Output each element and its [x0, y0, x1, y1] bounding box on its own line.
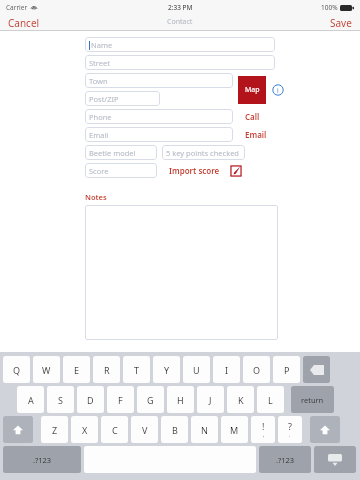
button[interactable]: P	[273, 356, 300, 383]
button[interactable]: Phone	[85, 109, 233, 124]
staticText: R	[104, 364, 110, 376]
button[interactable]: return	[291, 386, 334, 413]
button[interactable]: W	[33, 356, 60, 383]
button[interactable]: Save	[322, 14, 360, 30]
button[interactable]: .?123	[259, 446, 311, 473]
button[interactable]: Town	[85, 73, 233, 88]
staticText: Town	[89, 76, 108, 86]
button[interactable]: Call	[243, 109, 262, 124]
button[interactable]: R	[93, 356, 120, 383]
staticText: F	[118, 394, 123, 406]
staticText: Notes	[85, 192, 107, 202]
button[interactable]: Q	[3, 356, 30, 383]
staticText: .?123	[33, 455, 52, 465]
button[interactable]: A	[17, 386, 44, 413]
staticText: J	[209, 394, 212, 406]
button[interactable]: Shift right	[310, 416, 340, 443]
button[interactable]: F	[107, 386, 134, 413]
staticText: Phone	[89, 112, 112, 122]
button[interactable]: .?123	[3, 446, 81, 473]
staticText: N	[201, 424, 208, 436]
staticText: Post/ZIP	[89, 94, 119, 104]
staticText: Street	[89, 58, 110, 68]
button[interactable]: Post/ZIP	[85, 91, 160, 106]
staticText: i	[277, 86, 279, 95]
button[interactable]: Z	[41, 416, 68, 443]
button[interactable]: Score	[85, 163, 157, 178]
button[interactable]: K	[227, 386, 254, 413]
staticText: W	[42, 364, 51, 376]
button[interactable]: Name	[85, 37, 275, 52]
staticText: T	[134, 364, 140, 376]
staticText: Name	[91, 40, 113, 50]
button[interactable]: T	[123, 356, 150, 383]
button[interactable]: N	[191, 416, 218, 443]
button[interactable]: Cancel	[0, 14, 48, 30]
button[interactable]: M	[221, 416, 248, 443]
button[interactable]: Backspace	[303, 356, 330, 383]
button[interactable]: J	[197, 386, 224, 413]
button[interactable]: H	[167, 386, 194, 413]
button[interactable]: C	[101, 416, 128, 443]
button[interactable]: B	[161, 416, 188, 443]
staticText: 2:33 PM	[168, 3, 193, 12]
button[interactable]: E	[63, 356, 90, 383]
button[interactable]: Info	[272, 84, 284, 96]
staticText: Beetle model	[89, 148, 136, 158]
staticText: D	[87, 394, 94, 406]
button[interactable]: O	[243, 356, 270, 383]
staticText: V	[142, 424, 148, 436]
staticText: return	[301, 395, 324, 405]
staticText: C	[112, 424, 118, 436]
staticText: O	[253, 364, 261, 376]
staticText: Call	[245, 111, 260, 122]
staticText: A	[28, 394, 34, 406]
staticText: .?123	[276, 455, 295, 465]
button[interactable]: 5 key points checked	[162, 145, 245, 160]
button[interactable]: I	[213, 356, 240, 383]
staticText: H	[177, 394, 184, 406]
staticText: B	[172, 424, 178, 436]
staticText: Import score	[169, 165, 220, 176]
staticText: Carrier	[6, 3, 28, 12]
staticText: P	[284, 364, 290, 376]
staticText: Cancel	[8, 16, 40, 28]
button[interactable]: G	[137, 386, 164, 413]
staticText: M	[230, 424, 239, 436]
staticText: S	[58, 394, 63, 406]
button[interactable]	[85, 205, 278, 340]
staticText: Q	[13, 364, 21, 376]
staticText: Score	[89, 166, 109, 176]
staticText: 100%	[321, 3, 338, 12]
button[interactable]: Shift	[3, 416, 33, 443]
staticText: Email	[245, 129, 267, 140]
staticText: E	[74, 364, 80, 376]
button[interactable]: Email	[243, 127, 269, 142]
staticText: X	[82, 424, 88, 436]
staticText: 5 key points checked	[166, 148, 239, 158]
button[interactable]: !	[251, 416, 275, 443]
staticText: L	[268, 394, 273, 406]
button[interactable]: Email	[85, 127, 233, 142]
button[interactable]: Y	[153, 356, 180, 383]
staticText: Z	[52, 424, 58, 436]
button[interactable]: Import	[230, 165, 242, 177]
staticText: U	[193, 364, 200, 376]
button[interactable]: Beetle model	[85, 145, 157, 160]
button[interactable]: ?	[278, 416, 302, 443]
button[interactable]: X	[71, 416, 98, 443]
button[interactable]: S	[47, 386, 74, 413]
button[interactable]: L	[257, 386, 284, 413]
staticText: .	[289, 432, 291, 439]
button[interactable]: Map	[238, 76, 266, 104]
staticText: Contact	[167, 17, 193, 27]
staticText: ?	[288, 420, 292, 432]
button[interactable]: Street	[85, 55, 275, 70]
button[interactable]: D	[77, 386, 104, 413]
button[interactable]: Hide keyboard	[314, 446, 356, 473]
button[interactable]: U	[183, 356, 210, 383]
button[interactable]: Import score	[167, 163, 222, 178]
button[interactable]: V	[131, 416, 158, 443]
